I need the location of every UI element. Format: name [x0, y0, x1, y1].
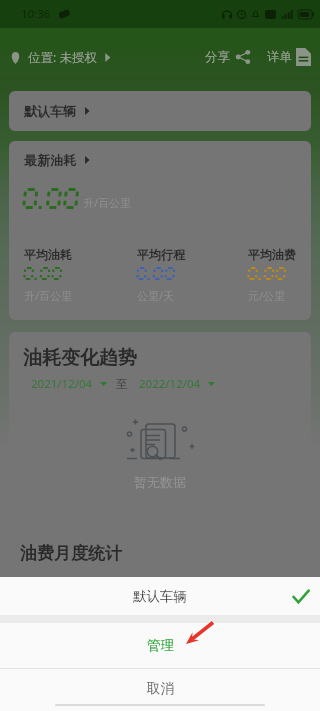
staticText: 油费月度统计	[20, 543, 122, 564]
staticText: 管理	[147, 637, 174, 654]
staticText: 升/百公里	[24, 288, 73, 303]
button[interactable]: 默认车辆	[0, 577, 320, 615]
staticText: 取消	[147, 680, 174, 697]
button[interactable]: 2022/12/04	[139, 376, 215, 392]
button[interactable]: 分享	[205, 49, 251, 65]
staticText: 位置: 未授权	[28, 49, 98, 66]
staticText: 公里/天	[137, 288, 175, 303]
staticText: 10:36	[21, 6, 51, 22]
button[interactable]: 位置: 未授权	[11, 43, 111, 72]
staticText: 元/公里	[248, 288, 286, 303]
button[interactable]: 详单	[267, 48, 311, 66]
staticText: 油耗变化趋势	[23, 346, 137, 370]
staticText: 默认车辆	[133, 588, 187, 605]
staticText: 平均行程	[137, 247, 185, 262]
staticText: 默认车辆	[24, 103, 76, 119]
other: Selected	[293, 590, 309, 603]
staticText: 2022/12/04	[139, 376, 201, 392]
staticText: 平均油费	[248, 247, 296, 262]
button[interactable]: 最新油耗	[24, 152, 90, 168]
staticText: 升/百公里	[83, 195, 132, 210]
staticText: 至	[116, 377, 128, 391]
staticText: 平均油耗	[24, 247, 72, 262]
button[interactable]: 2021/12/04	[31, 376, 107, 392]
button[interactable]: 默认车辆	[9, 91, 311, 131]
staticText: 2021/12/04	[31, 376, 93, 392]
staticText: 暂无数据	[134, 474, 186, 490]
button[interactable]: 管理	[0, 623, 320, 668]
button[interactable]: 取消	[0, 669, 320, 711]
staticText: 分享	[205, 49, 230, 65]
staticText: 最新油耗	[24, 152, 76, 168]
staticText: 详单	[267, 49, 292, 65]
